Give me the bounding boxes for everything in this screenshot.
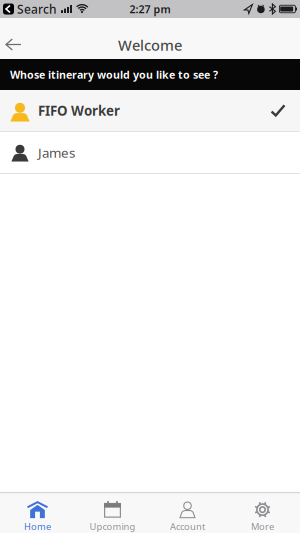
staticText: 2:27 pm [129,2,170,16]
button[interactable]: Account [150,493,225,533]
staticText: Search [17,1,57,17]
button[interactable]: Back [0,18,21,59]
button[interactable]: More [225,493,300,533]
staticText: Whose itinerary would you like to see ? [10,67,218,82]
staticText: More [251,520,274,533]
staticText: Home [24,520,51,533]
button[interactable]: James [0,132,300,173]
staticText: James [38,144,75,161]
staticText: Account [170,520,205,533]
button[interactable]: Home [0,493,75,533]
staticText: FIFO Worker [38,102,120,119]
button[interactable]: Upcoming [75,493,150,533]
button[interactable]: FIFO Worker [0,90,300,131]
staticText: Welcome [118,35,182,55]
staticText: Upcoming [89,520,135,533]
